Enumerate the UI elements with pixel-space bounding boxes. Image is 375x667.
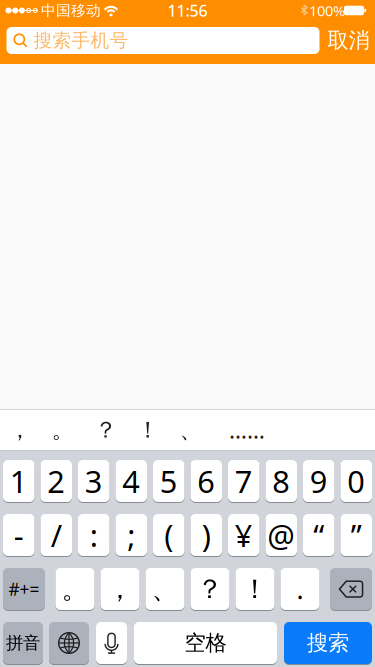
staticText: .: [296, 571, 303, 607]
staticText: 。: [51, 416, 74, 444]
button[interactable]: ，: [100, 568, 139, 610]
staticText: :: [90, 515, 98, 555]
button[interactable]: 8: [265, 460, 297, 502]
button[interactable]: 3: [78, 460, 109, 502]
button[interactable]: 取消: [327, 27, 369, 54]
staticText: 搜索: [307, 630, 349, 656]
button[interactable]: 。: [55, 568, 94, 610]
button[interactable]: ！: [136, 416, 159, 444]
button[interactable]: “: [303, 514, 334, 556]
button[interactable]: 9: [303, 460, 334, 502]
button[interactable]: 、: [179, 416, 202, 444]
button[interactable]: (: [153, 514, 184, 556]
staticText: 搜索手机号: [33, 29, 128, 52]
staticText: #+=: [8, 577, 39, 600]
button[interactable]: ): [190, 514, 222, 556]
button[interactable]: Dictation: [96, 622, 127, 664]
staticText: (: [164, 515, 173, 555]
staticText: 、: [151, 573, 178, 605]
staticText: ？: [196, 573, 223, 605]
button[interactable]: ……: [229, 415, 265, 445]
button[interactable]: Delete: [330, 568, 372, 610]
staticText: ！: [136, 416, 159, 444]
staticText: 9: [310, 461, 328, 501]
button[interactable]: 搜索: [284, 622, 372, 664]
button[interactable]: ，: [8, 416, 31, 444]
staticText: ;: [127, 515, 135, 555]
button[interactable]: :: [78, 514, 109, 556]
button[interactable]: ？: [190, 568, 229, 610]
staticText: -: [14, 515, 24, 555]
staticText: ”: [351, 515, 362, 555]
staticText: “: [313, 515, 324, 555]
button[interactable]: Next keyboard: [49, 622, 89, 664]
staticText: 拼音: [6, 632, 40, 654]
staticText: ，: [8, 416, 31, 444]
button[interactable]: #+=: [3, 568, 45, 610]
staticText: 3: [85, 461, 103, 501]
button[interactable]: .: [280, 568, 319, 610]
button[interactable]: 拼音: [3, 622, 43, 664]
button[interactable]: /: [40, 514, 72, 556]
staticText: 取消: [327, 27, 369, 54]
staticText: ，: [106, 573, 133, 605]
staticText: 0: [347, 461, 365, 501]
button[interactable]: ？: [94, 416, 117, 444]
button[interactable]: -: [3, 514, 34, 556]
staticText: 。: [61, 573, 88, 605]
staticText: 11:56: [167, 0, 207, 21]
staticText: ): [202, 515, 211, 555]
button[interactable]: ;: [115, 514, 147, 556]
button[interactable]: ¥: [228, 514, 259, 556]
button[interactable]: 1: [3, 460, 34, 502]
staticText: 1: [10, 461, 28, 501]
button[interactable]: ！: [235, 568, 274, 610]
staticText: 8: [272, 461, 290, 501]
staticText: ¥: [235, 515, 253, 555]
staticText: 中国移动: [41, 1, 101, 19]
staticText: 100%: [309, 1, 345, 20]
button[interactable]: 7: [228, 460, 259, 502]
staticText: 空格: [184, 630, 226, 656]
staticText: @: [267, 515, 295, 555]
staticText: 5: [160, 461, 178, 501]
staticText: 、: [179, 416, 202, 444]
staticText: /: [51, 515, 62, 555]
staticText: 7: [235, 461, 253, 501]
button[interactable]: 0: [340, 460, 372, 502]
staticText: 4: [122, 461, 140, 501]
button[interactable]: 、: [145, 568, 184, 610]
button[interactable]: @: [265, 514, 297, 556]
button[interactable]: 4: [115, 460, 147, 502]
button[interactable]: ”: [340, 514, 372, 556]
button[interactable]: 空格: [134, 622, 277, 664]
staticText: 2: [47, 461, 65, 501]
button[interactable]: 5: [153, 460, 184, 502]
button[interactable]: 。: [51, 416, 74, 444]
button[interactable]: 搜索手机号: [6, 27, 319, 54]
staticText: ？: [94, 416, 117, 444]
staticText: ……: [229, 415, 265, 445]
staticText: ！: [241, 573, 268, 605]
button[interactable]: 2: [40, 460, 72, 502]
button[interactable]: 6: [190, 460, 222, 502]
staticText: 6: [197, 461, 215, 501]
